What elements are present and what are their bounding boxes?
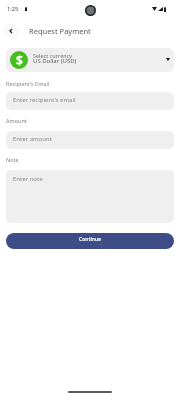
staticText: Continue	[79, 236, 101, 243]
button[interactable]: Continue	[6, 233, 174, 249]
button[interactable]: Back	[3, 23, 19, 39]
staticText: Enter amount	[13, 135, 52, 143]
button[interactable]: Enter recipient's email	[6, 92, 174, 110]
staticText: Note	[6, 156, 19, 163]
button[interactable]: Enter note	[6, 170, 174, 223]
button[interactable]: $	[6, 48, 174, 72]
staticText: Enter note	[13, 175, 43, 183]
staticText: Enter recipient's email	[13, 96, 76, 104]
button[interactable]: Enter amount	[6, 131, 174, 149]
staticText: Amount	[6, 117, 27, 124]
staticText: Select currency	[33, 52, 73, 59]
staticText: Recipient's Email	[6, 80, 50, 87]
staticText: $	[16, 52, 23, 68]
staticText: Request Payment	[29, 26, 91, 36]
staticText: US Dollar (USD)	[33, 57, 77, 65]
staticText: 1:25	[7, 5, 19, 13]
